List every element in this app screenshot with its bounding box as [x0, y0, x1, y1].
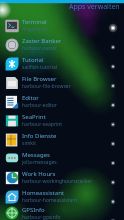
button[interactable]: SeaPrint [0, 111, 124, 130]
button[interactable]: Tutorial [0, 54, 124, 73]
staticText: Terminal [22, 18, 47, 26]
staticText: jolla-messages [22, 159, 57, 166]
staticText: harbour-homeassistant [22, 197, 78, 204]
button[interactable]: Messages [0, 149, 124, 168]
button[interactable]: File Browser [0, 73, 124, 92]
staticText: Tutorial [22, 56, 44, 64]
button[interactable]: GPSInfo [0, 206, 124, 220]
staticText: Messages [22, 151, 50, 159]
staticText: harbour-editor [22, 102, 57, 109]
staticText: File Browser [22, 75, 57, 83]
button[interactable]: Info Dienste [0, 130, 124, 149]
staticText: simkit [22, 140, 37, 147]
staticText: Zaster Banker [22, 37, 62, 45]
staticText: harbour-zaster [22, 45, 58, 52]
staticText: Work Hours [22, 170, 56, 178]
button[interactable]: Editor [0, 92, 124, 111]
staticText: SeaPrint [22, 113, 46, 121]
staticText: harbour-seaprint [22, 121, 63, 128]
staticText: GPSInfo [22, 206, 45, 214]
staticText: Editor [22, 94, 39, 102]
staticText: harbour-gpsinfo [22, 214, 61, 220]
staticText: harbour-file-browser [22, 83, 71, 90]
button[interactable]: Work Hours [0, 168, 124, 187]
button[interactable]: Terminal [0, 16, 124, 35]
staticText: fingerterm [22, 26, 48, 33]
button[interactable]: Zaster Banker [0, 35, 124, 54]
staticText: Info Dienste [22, 132, 57, 140]
staticText: Homeassistant [22, 189, 65, 197]
staticText: Apps verwalten [69, 2, 120, 12]
staticText: sailfish-tutorial [22, 64, 58, 71]
staticText: harbour-workinghourstracker [22, 178, 93, 185]
button[interactable]: Homeassistant [0, 187, 124, 206]
